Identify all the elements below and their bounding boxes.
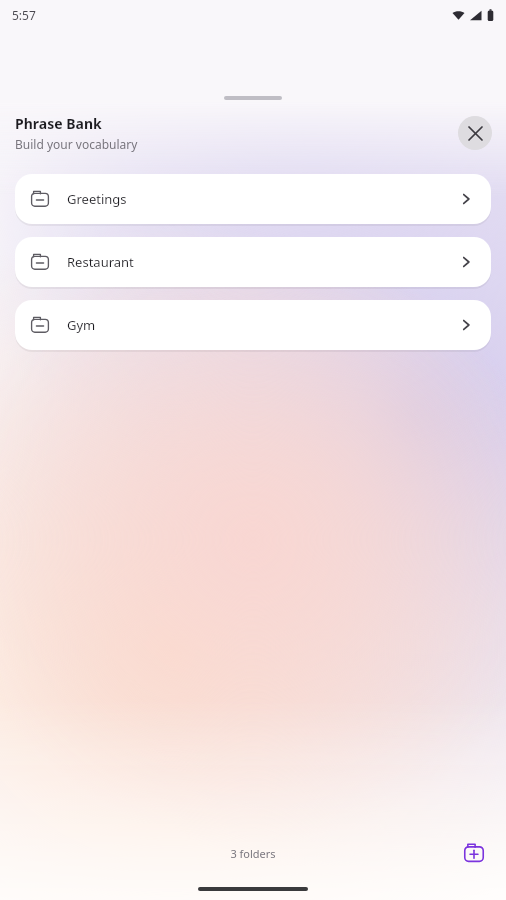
staticText: 5:57 — [12, 7, 36, 23]
button[interactable]: Greetings — [15, 174, 491, 224]
staticText: 3 folders — [230, 846, 276, 861]
button[interactable]: Add folder — [454, 833, 494, 873]
staticText: Gym — [67, 316, 458, 334]
staticText: Greetings — [67, 190, 458, 208]
staticText: Restaurant — [67, 253, 458, 271]
button[interactable]: Close — [458, 116, 492, 150]
button[interactable]: Restaurant — [15, 237, 491, 287]
staticText: Build your vocabulary — [15, 136, 138, 152]
staticText: Phrase Bank — [15, 114, 102, 133]
button[interactable]: Gym — [15, 300, 491, 350]
